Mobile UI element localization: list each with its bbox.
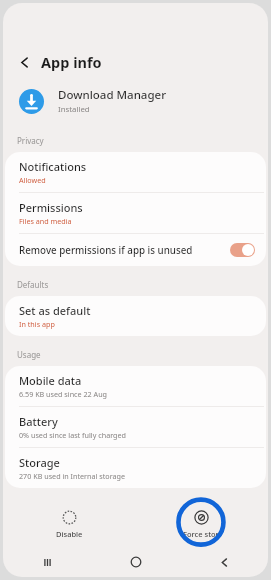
- button[interactable]: Force stop: [135, 501, 268, 547]
- staticText: Privacy: [17, 135, 44, 146]
- button[interactable]: Mobile data: [5, 366, 266, 406]
- staticText: Force stop: [183, 529, 221, 539]
- staticText: Storage: [19, 455, 60, 470]
- button[interactable]: Permissions: [5, 193, 266, 233]
- button[interactable]: Remove permissions if app is unused: [5, 234, 266, 266]
- staticText: Set as default: [19, 303, 91, 318]
- staticText: Battery: [19, 414, 58, 429]
- staticText: Usage: [17, 349, 41, 360]
- staticText: Notifications: [19, 159, 87, 174]
- staticText: Disable: [56, 529, 83, 539]
- staticText: In this app: [19, 319, 55, 329]
- staticText: 270 KB used in Internal storage: [19, 471, 125, 481]
- button[interactable]: Disable: [3, 501, 135, 547]
- staticText: Allowed: [19, 175, 46, 185]
- staticText: Defaults: [17, 279, 49, 290]
- button[interactable]: Battery: [5, 407, 266, 447]
- button[interactable]: Back: [14, 52, 34, 72]
- button[interactable]: Storage: [5, 448, 266, 488]
- staticText: Mobile data: [19, 373, 82, 388]
- staticText: 6.59 KB used since 22 Aug: [19, 389, 108, 399]
- staticText: Installed: [58, 104, 90, 115]
- staticText: Remove permissions if app is unused: [19, 244, 225, 257]
- button[interactable]: Recents: [3, 547, 92, 577]
- staticText: App info: [41, 52, 102, 72]
- staticText: Download Manager: [58, 87, 167, 103]
- button[interactable]: Notifications: [5, 152, 266, 192]
- staticText: 0% used since last fully charged: [19, 430, 126, 440]
- button[interactable]: Back: [180, 547, 268, 577]
- button[interactable]: Set as default: [5, 296, 266, 336]
- staticText: Files and media: [19, 216, 72, 226]
- staticText: Permissions: [19, 200, 83, 215]
- button[interactable]: Home: [92, 547, 180, 577]
